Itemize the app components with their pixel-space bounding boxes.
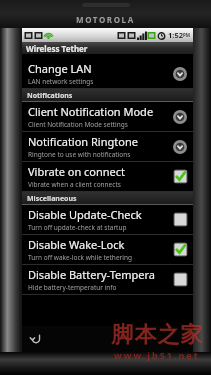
staticText: Client Notification Mode (28, 104, 154, 119)
staticText: Notification Ringtone (28, 134, 138, 149)
other: Vibrate on connect, checked (173, 169, 188, 184)
staticText: Notifications (27, 91, 73, 101)
other: Change LAN settings (172, 66, 188, 82)
button[interactable]: Disable Wake-Lock (22, 235, 193, 264)
other: Notification ringtone settings (172, 139, 188, 155)
button[interactable]: Client Notification Mode (22, 102, 193, 131)
staticText: Disable Update-Check (28, 207, 142, 222)
button[interactable]: Disable Battery-Tempera (22, 265, 193, 294)
button[interactable]: Back (28, 331, 44, 347)
staticText: Disable Wake-Lock (28, 237, 125, 252)
other: Disable wake lock, checked (173, 242, 188, 257)
staticText: Client Notification Mode settings (28, 120, 128, 129)
button[interactable]: Vibrate on connect (22, 162, 193, 191)
staticText: PM (183, 32, 191, 38)
other: Disable battery temperature, unchecked (173, 272, 188, 287)
staticText: LAN network settings (28, 77, 94, 86)
staticText: Change LAN (28, 61, 92, 76)
staticText: Miscellaneous (27, 194, 77, 204)
staticText: Wireless Tether (26, 43, 88, 54)
staticText: Disable Battery-Tempera (28, 267, 155, 282)
staticText: Vibrate when a client connects (28, 180, 121, 189)
staticText: 1:52 (168, 30, 183, 40)
staticText: Vibrate on connect (28, 164, 126, 179)
button[interactable]: Change LAN (22, 59, 193, 88)
staticText: Hide battery-temperatur info (28, 283, 117, 292)
other: Disable update check, unchecked (173, 212, 188, 227)
staticText: Turn off update-check at startup (28, 223, 127, 232)
staticText: www.jb51.net (114, 349, 200, 361)
staticText: MOTOROLA (76, 14, 135, 25)
staticText: Turn off wake-lock while tethering (28, 253, 132, 262)
button[interactable]: Notification Ringtone (22, 132, 193, 161)
staticText: Ringtone to use with notifications (28, 150, 131, 159)
other: Client notification mode settings (172, 109, 188, 125)
staticText: 脚本之家 (111, 321, 203, 349)
button[interactable]: Disable Update-Check (22, 205, 193, 234)
